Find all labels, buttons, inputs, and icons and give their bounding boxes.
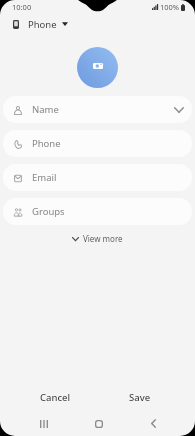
button[interactable]: Back [137,410,169,436]
button[interactable]: Name [3,96,192,123]
button[interactable]: Cancel [13,386,97,408]
staticText: View more [83,233,123,244]
button[interactable]: Phone [0,15,76,33]
button[interactable]: Home [83,410,115,436]
staticText: Email [32,171,57,184]
staticText: 10:00 [12,2,32,12]
button[interactable]: Save [97,386,182,408]
button[interactable]: Email [3,164,192,191]
staticText: Save [129,391,151,404]
staticText: Cancel [40,391,71,404]
staticText: Name [32,103,59,116]
staticText: Phone [32,137,61,150]
staticText: Groups [32,205,65,218]
button[interactable]: Add photo [77,47,118,88]
button[interactable]: Phone [3,130,192,157]
staticText: 100% [160,2,180,12]
button[interactable]: View more [64,230,131,247]
staticText: Phone [28,18,57,31]
button[interactable]: Groups [3,198,192,225]
button[interactable]: Recents [28,410,60,436]
